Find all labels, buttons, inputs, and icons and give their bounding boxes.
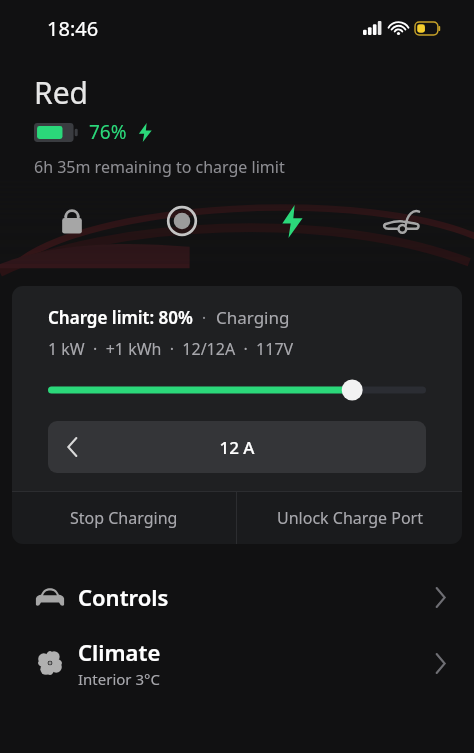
button[interactable]: Charging <box>268 197 316 245</box>
staticText: Unlock Charge Port <box>277 507 423 529</box>
staticText: 18:46 <box>47 15 99 42</box>
staticText: 76% <box>89 119 127 145</box>
button[interactable]: Climate control <box>158 197 206 245</box>
staticText: Interior 3°C <box>78 669 160 689</box>
button[interactable]: Stop Charging <box>12 492 236 544</box>
button[interactable] <box>48 377 426 403</box>
button[interactable]: Unlock Charge Port <box>237 492 462 544</box>
staticText: · <box>193 306 216 329</box>
button[interactable]: Lock <box>48 197 96 245</box>
staticText: Controls <box>78 582 169 612</box>
button[interactable]: Decrease amps <box>48 421 96 473</box>
staticText: 1 kW · +1 kWh · 12/12A · 117V <box>48 338 294 360</box>
staticText: Climate <box>78 637 161 667</box>
staticText: Stop Charging <box>70 507 178 529</box>
staticText: Charge limit: 80% <box>48 306 193 329</box>
button[interactable]: Decrease amps <box>48 421 426 473</box>
button[interactable]: Climate <box>0 630 474 696</box>
staticText: Red <box>34 72 89 113</box>
staticText: Charging <box>216 306 290 329</box>
staticText: 6h 35m remaining to charge limit <box>34 156 285 178</box>
button[interactable]: Open trunk <box>378 197 426 245</box>
button[interactable]: Controls <box>0 564 474 630</box>
staticText: 12 A <box>96 436 378 459</box>
